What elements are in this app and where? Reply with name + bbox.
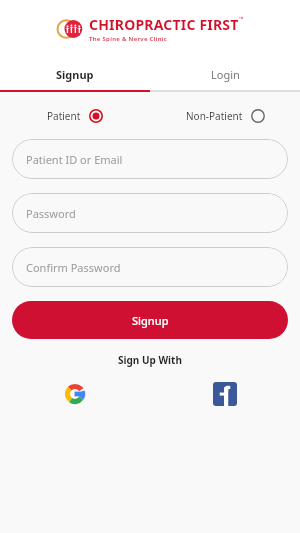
staticText: Login: [211, 67, 240, 82]
staticText: CHIROPRACTIC FIRST: [89, 15, 239, 34]
staticText: ™: [239, 15, 244, 23]
staticText: Password: [26, 206, 76, 221]
staticText: The Spine & Nerve Clinic: [89, 35, 168, 43]
button[interactable]: Patient: [0, 109, 150, 123]
staticText: Confirm Password: [26, 260, 121, 275]
button[interactable]: Sign up with Facebook: [210, 379, 240, 409]
button[interactable]: Patient ID or Email: [12, 139, 288, 179]
staticText: Non-Patient: [186, 109, 243, 123]
button[interactable]: Confirm Password: [12, 247, 288, 287]
button[interactable]: Login: [150, 58, 300, 90]
staticText: Sign Up With: [0, 353, 300, 367]
button[interactable]: Signup: [0, 58, 150, 90]
staticText: Patient ID or Email: [26, 152, 123, 167]
button[interactable]: Signup: [12, 301, 288, 339]
button[interactable]: Non-Patient: [150, 109, 300, 123]
button[interactable]: Password: [12, 193, 288, 233]
button[interactable]: Sign up with Google: [60, 379, 90, 409]
staticText: Signup: [132, 313, 169, 328]
staticText: Patient: [47, 109, 81, 123]
staticText: Signup: [56, 67, 94, 82]
